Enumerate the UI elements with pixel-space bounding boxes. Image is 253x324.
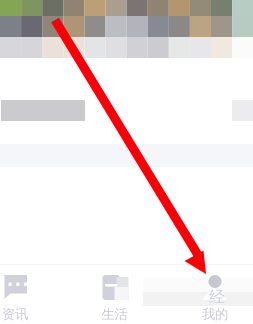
staticText: 我的 (202, 306, 228, 322)
button[interactable]: 经 (185, 275, 245, 324)
staticText: 经 (209, 287, 225, 307)
staticText: 资讯 (2, 306, 28, 322)
button[interactable]: 生活 (84, 275, 144, 324)
staticText: 生活 (101, 306, 127, 322)
button[interactable]: 资讯 (0, 275, 45, 324)
